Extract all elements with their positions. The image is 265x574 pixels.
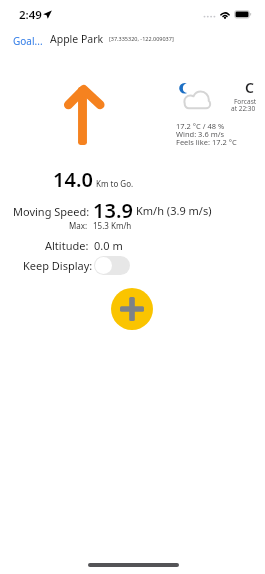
staticText: Goal... bbox=[13, 34, 43, 48]
button[interactable]: Goal... bbox=[13, 34, 43, 48]
button[interactable]: Keep Display toggle bbox=[94, 256, 130, 275]
staticText: 17.2 °C / 48 % bbox=[176, 121, 225, 131]
staticText: 15.3 Km/h bbox=[93, 220, 132, 231]
staticText: 14.0 bbox=[53, 166, 93, 193]
staticText: [37.335320, -122.009037] bbox=[109, 35, 174, 42]
staticText: Forcast bbox=[234, 97, 257, 106]
button[interactable]: Add bbox=[111, 288, 153, 330]
staticText: at 22:30 bbox=[231, 104, 256, 113]
staticText: Wind: 3.6 m/s bbox=[176, 129, 225, 139]
staticText: Max: bbox=[69, 220, 88, 231]
staticText: 2:49 bbox=[19, 7, 42, 23]
staticText: Keep Display: bbox=[23, 258, 93, 273]
staticText: Altitude: bbox=[45, 238, 89, 253]
staticText: 0.0 m bbox=[94, 238, 123, 253]
staticText: C bbox=[245, 78, 254, 97]
staticText: Apple Park bbox=[50, 32, 104, 46]
staticText: Moving Speed: bbox=[13, 204, 90, 219]
staticText: Feels like: 17.2 °C bbox=[176, 137, 237, 147]
staticText: 13.9 bbox=[93, 197, 133, 224]
staticText: Km to Go. bbox=[96, 178, 134, 189]
staticText: Km/h (3.9 m/s) bbox=[136, 203, 212, 218]
